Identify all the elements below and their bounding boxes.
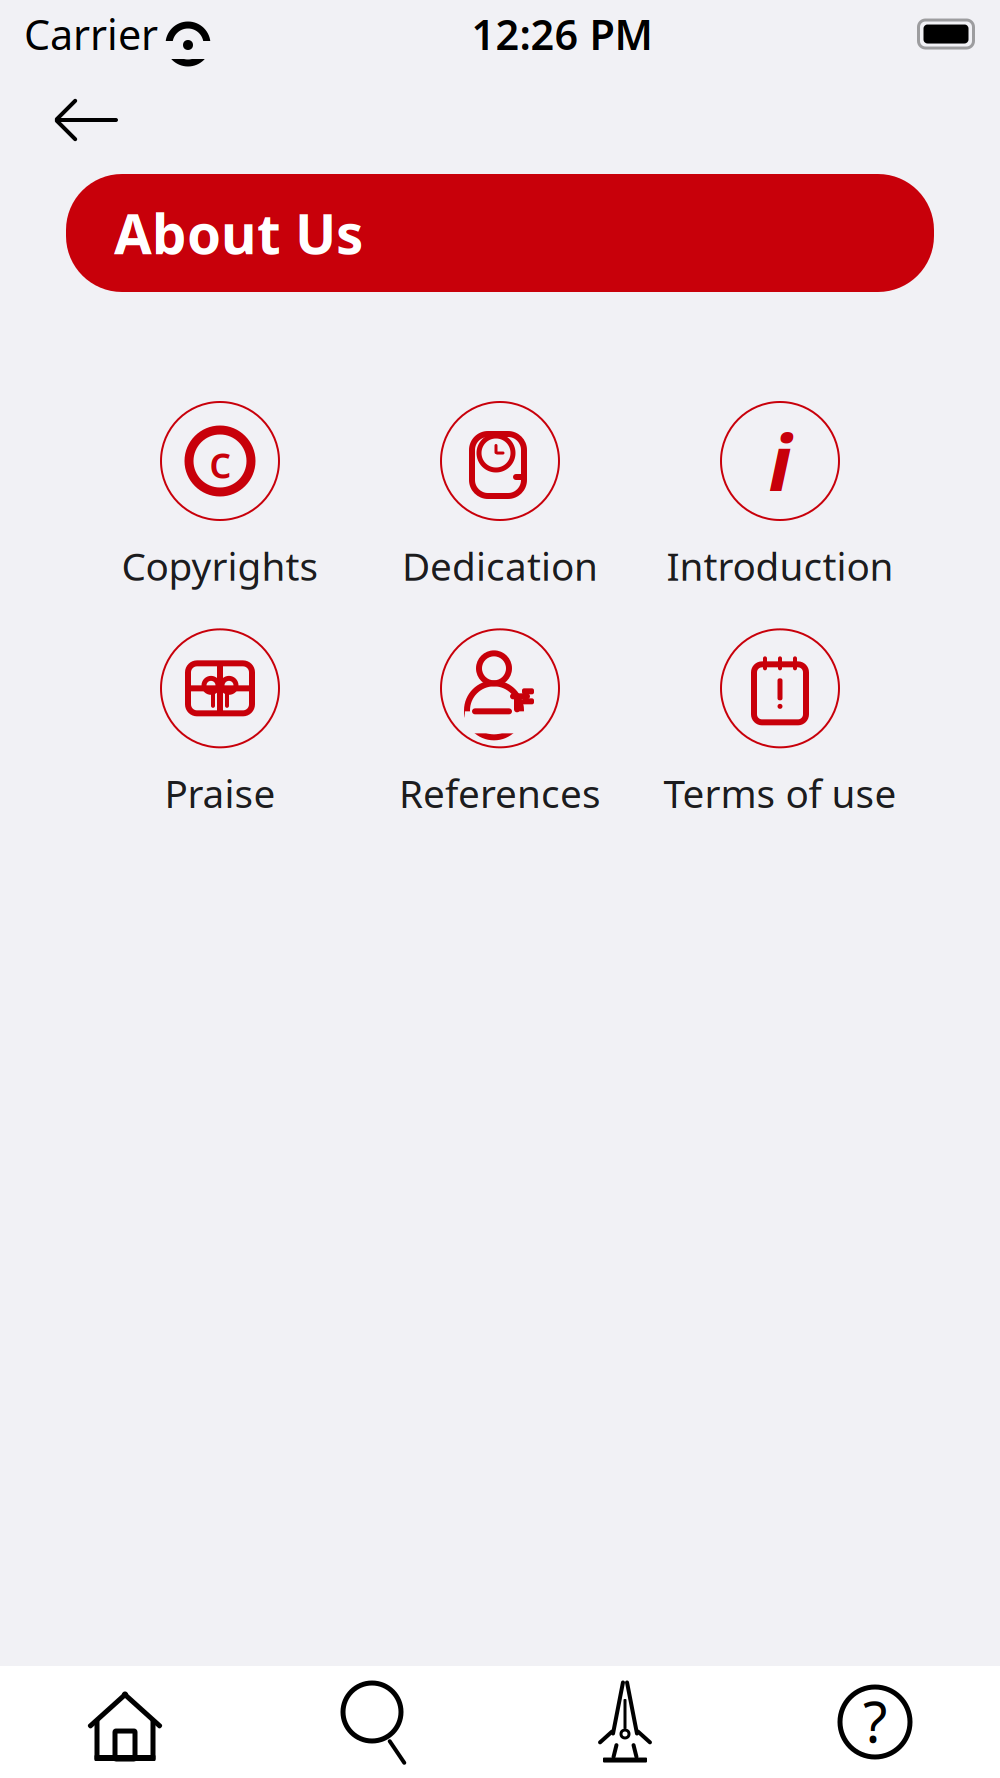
button[interactable]: Praise [80, 629, 360, 819]
button[interactable]: Home [0, 1682, 250, 1762]
staticText: Introduction [666, 540, 893, 591]
staticText: Dedication [402, 540, 598, 591]
button[interactable]: c [80, 402, 360, 591]
staticText: 12:26 PM [471, 7, 652, 61]
button[interactable]: About Us [66, 174, 934, 292]
staticText: References [399, 767, 601, 819]
staticText: c [209, 431, 231, 491]
button[interactable]: References [360, 629, 640, 819]
staticText: Terms of use [663, 767, 896, 819]
staticText: Praise [164, 767, 275, 819]
button[interactable]: Write [500, 1677, 750, 1767]
button[interactable]: Dedication [360, 402, 640, 591]
staticText: Carrier [24, 7, 158, 61]
button[interactable]: Terms of use [640, 629, 920, 819]
staticText: Copyrights [121, 540, 318, 591]
button[interactable]: Help [750, 1681, 1000, 1763]
staticText: ? [863, 1684, 887, 1758]
staticText: About Us [114, 197, 363, 269]
button[interactable]: Back [40, 88, 126, 152]
button[interactable]: i [640, 402, 920, 591]
button[interactable]: Search [250, 1679, 500, 1765]
staticText: i [768, 410, 791, 512]
